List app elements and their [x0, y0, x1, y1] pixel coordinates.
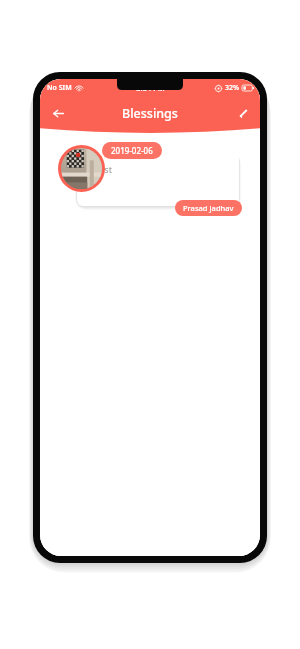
staticText: test: [96, 163, 112, 175]
button[interactable]: test: [40, 133, 260, 229]
staticText: 32%: [225, 83, 240, 93]
button[interactable]: Back: [46, 101, 70, 125]
button[interactable]: Edit: [232, 102, 254, 124]
button[interactable]: 2019-02-06: [102, 142, 162, 159]
staticText: 2019-02-06: [111, 145, 153, 156]
staticText: Prasad Jadhav: [183, 203, 234, 213]
staticText: 3:34 PM: [136, 83, 165, 93]
button[interactable]: Prasad Jadhav: [175, 200, 242, 216]
button[interactable]: Profile photo: [58, 145, 105, 192]
staticText: No SIM: [47, 83, 72, 93]
staticText: Blessings: [122, 105, 178, 122]
